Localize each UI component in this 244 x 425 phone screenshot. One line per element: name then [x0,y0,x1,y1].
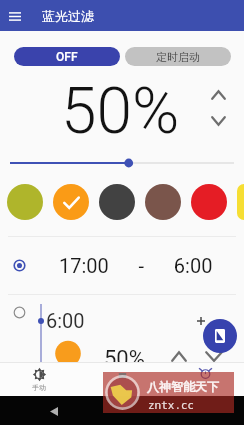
staticText: 八神智能天下 [147,379,219,394]
button[interactable]: 17:00 - 6:00 [0,237,244,294]
staticText: 蓝光过滤 [42,8,94,24]
button[interactable]: Intensity slider [0,153,244,173]
button[interactable]: Colour [99,184,135,220]
button[interactable]: 定时启动 [125,47,231,66]
staticText: 17:00 - 6:00 [59,254,213,277]
button[interactable]: Decrease brightness [202,344,226,368]
button[interactable]: Colour [191,184,227,220]
staticText: 手动 [32,383,46,392]
button[interactable]: Back [45,402,63,420]
button[interactable] [0,295,244,352]
button[interactable]: Increase brightness [167,344,191,368]
button[interactable]: Colour [145,184,181,220]
staticText: 定时启动 [156,50,200,64]
button[interactable]: 手动 [26,368,52,392]
staticText: zntx.cc [148,397,195,412]
button[interactable]: Colour [53,184,89,220]
button[interactable]: Menu [3,4,27,28]
staticText: 50% [104,346,145,372]
staticText: OFF [56,50,78,64]
button[interactable]: Increase [206,83,230,107]
button[interactable]: Decrease [206,109,230,133]
staticText: 50% [61,74,180,146]
button[interactable]: Screen filter [203,319,237,353]
staticText: 6:00 [46,309,85,332]
button[interactable]: Colour [237,184,244,220]
button[interactable]: Colour [7,184,43,220]
button[interactable]: OFF [14,47,120,66]
